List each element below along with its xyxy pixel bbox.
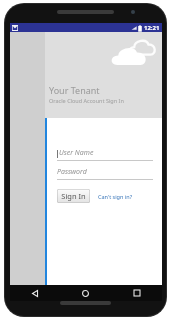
button[interactable]: Back xyxy=(10,285,60,301)
staticText: User Name xyxy=(59,148,94,158)
staticText: Your Tenant xyxy=(49,84,100,96)
button[interactable]: Home xyxy=(60,285,111,301)
button[interactable]: Password xyxy=(57,167,153,180)
button[interactable]: Recent apps xyxy=(111,285,162,301)
button[interactable]: Can't sign in? xyxy=(97,191,134,202)
staticText: Oracle Cloud Account Sign In xyxy=(49,97,124,104)
staticText: 12:21 xyxy=(144,24,160,32)
button[interactable]: User Name xyxy=(57,148,153,161)
staticText: Password xyxy=(57,167,87,177)
staticText: Can't sign in? xyxy=(98,193,133,200)
staticText: Sign In xyxy=(61,191,86,201)
button[interactable]: Sign In xyxy=(57,189,90,203)
